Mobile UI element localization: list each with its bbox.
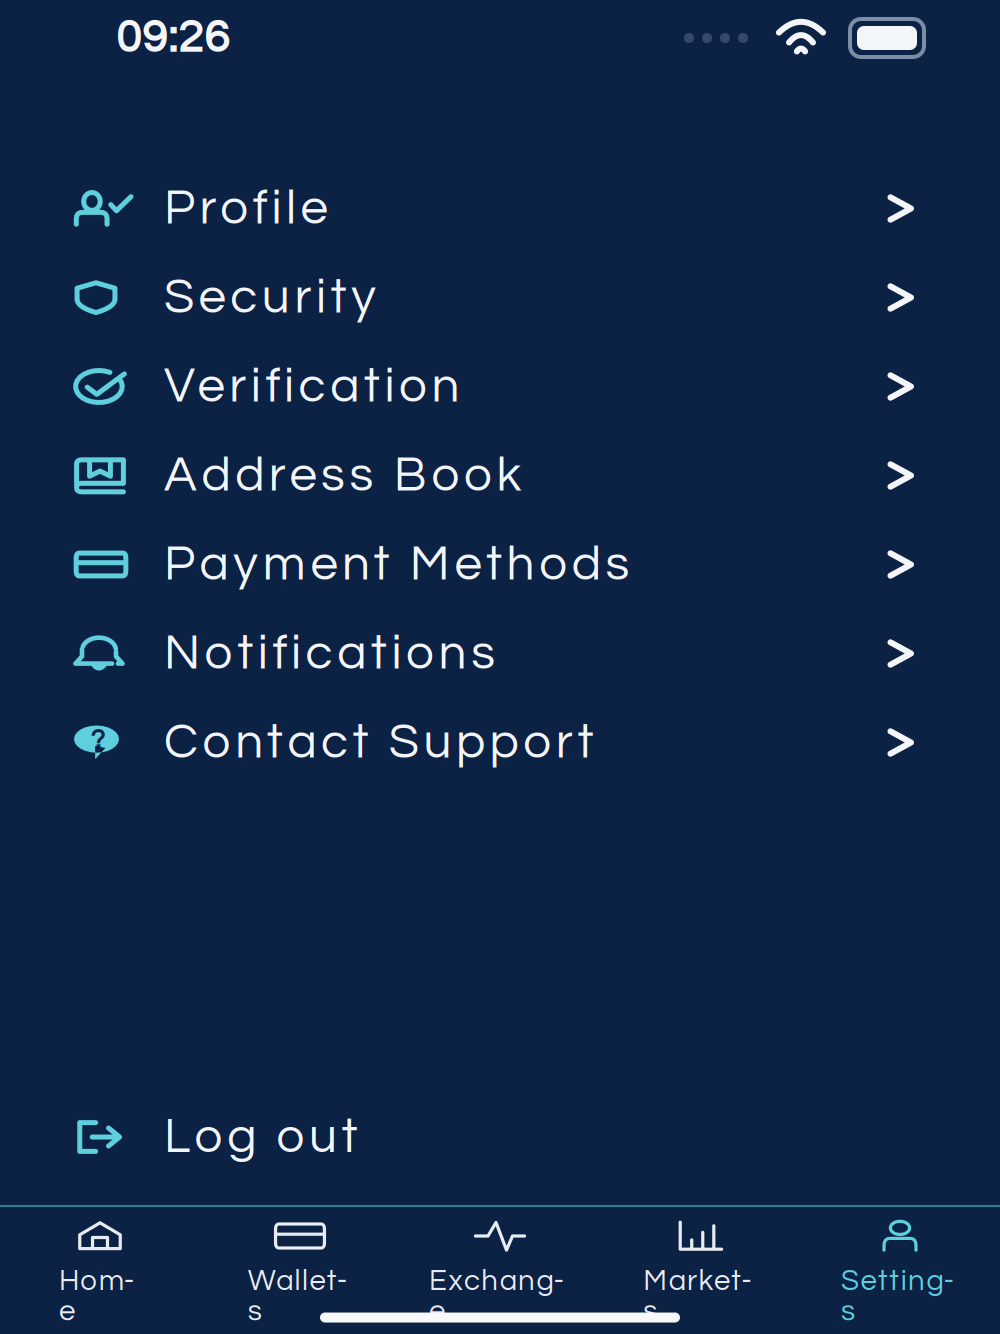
staticText: Payment Methods <box>164 539 629 590</box>
staticText: Exchange <box>429 1266 571 1296</box>
staticText: Home <box>59 1266 141 1296</box>
staticText: Profile <box>164 183 328 234</box>
button[interactable]: Wallets <box>200 1207 400 1301</box>
button[interactable]: Profile <box>0 164 1000 253</box>
staticText: Security <box>164 272 376 323</box>
button[interactable]: Notifications <box>0 609 1000 698</box>
staticText: ? <box>90 725 104 754</box>
staticText: 09:26 <box>116 15 229 61</box>
button[interactable]: Verification <box>0 342 1000 431</box>
button[interactable]: ? <box>0 698 1000 787</box>
button[interactable]: Address Book <box>0 431 1000 520</box>
button[interactable]: Settings <box>800 1207 1000 1301</box>
staticText: Verification <box>164 361 460 412</box>
staticText: Wallets <box>248 1266 352 1296</box>
button[interactable]: Log out <box>0 1097 1000 1177</box>
staticText: Address Book <box>164 450 522 501</box>
button[interactable]: Security <box>0 253 1000 342</box>
staticText: Log out <box>164 1112 358 1162</box>
button[interactable]: Markets <box>600 1207 800 1301</box>
button[interactable]: Payment Methods <box>0 520 1000 609</box>
button[interactable]: Exchange <box>400 1207 600 1301</box>
button[interactable]: Home <box>0 1207 200 1301</box>
staticText: Contact Support <box>164 717 593 768</box>
staticText: Notifications <box>164 628 495 679</box>
staticText: Settings <box>841 1266 959 1296</box>
staticText: Markets <box>643 1266 757 1296</box>
